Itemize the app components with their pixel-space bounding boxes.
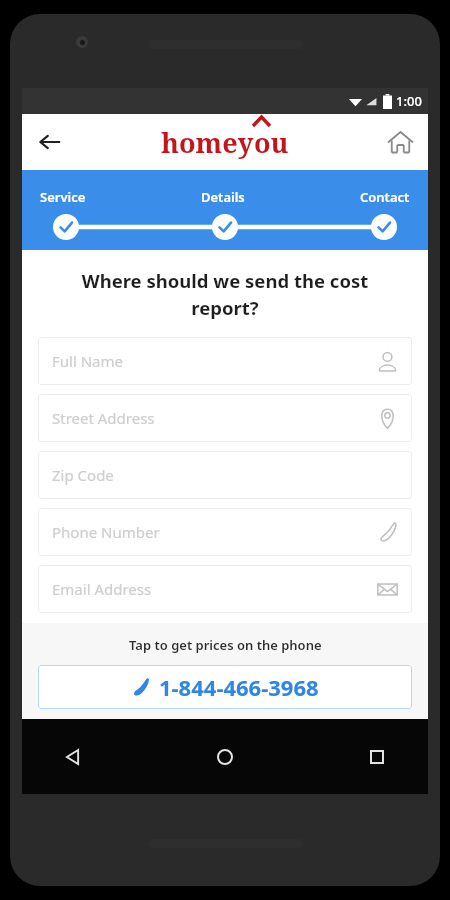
button[interactable]: Email Address (38, 565, 412, 613)
staticText: Service (40, 188, 86, 206)
staticText: ou (254, 124, 289, 161)
button[interactable]: Phone Number (38, 508, 412, 556)
staticText: Street Address (52, 408, 377, 428)
button[interactable]: Home (204, 736, 246, 778)
staticText: Zip Code (52, 465, 398, 485)
button[interactable]: Home (378, 120, 422, 164)
staticText: 1-844-466-3968 (159, 672, 319, 702)
button[interactable]: Full Name (38, 337, 412, 385)
button[interactable]: Back (52, 736, 94, 778)
button[interactable]: Recent apps (356, 736, 398, 778)
button[interactable]: 1-844-466-3968 (38, 665, 412, 709)
staticText: Contact (360, 188, 410, 206)
button[interactable]: Zip Code (38, 451, 412, 499)
staticText: Email Address (52, 579, 377, 599)
button[interactable]: Back (28, 120, 72, 164)
staticText: Details (201, 188, 245, 206)
staticText: Tap to get prices on the phone (129, 636, 322, 654)
staticText: Phone Number (52, 522, 377, 542)
staticText: 1:00 (396, 92, 422, 110)
staticText: Where should we send the cost report? (50, 268, 400, 321)
button[interactable]: Street Address (38, 394, 412, 442)
staticText: homey (161, 124, 254, 161)
staticText: Full Name (52, 351, 377, 371)
